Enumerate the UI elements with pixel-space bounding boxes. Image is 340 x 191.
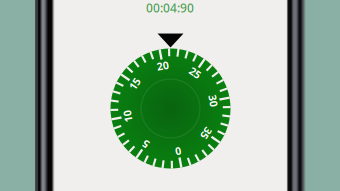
staticText: 00:04:90 (146, 0, 194, 16)
staticText: 0 (175, 144, 181, 158)
staticText: 25 (189, 66, 201, 80)
staticText: 5 (143, 137, 149, 151)
staticText: 10 (122, 109, 134, 123)
button[interactable]: Timer dial (0, 0, 340, 191)
staticText: 30 (207, 94, 219, 108)
staticText: 35 (200, 126, 212, 140)
staticText: 20 (157, 59, 169, 73)
staticText: 15 (129, 77, 141, 91)
